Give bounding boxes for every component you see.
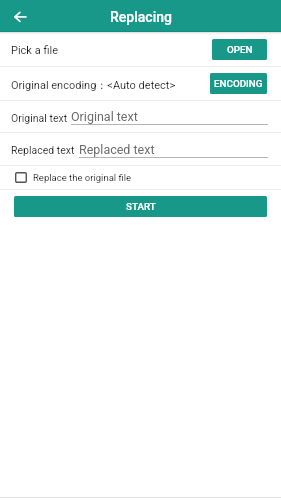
staticText: OPEN — [227, 44, 253, 55]
staticText: Replaced text — [11, 144, 75, 156]
button[interactable]: Replace the original file — [0, 166, 281, 189]
staticText: START — [126, 201, 156, 212]
staticText: Pick a file — [11, 44, 58, 57]
staticText: ENCODING — [214, 78, 263, 89]
staticText: Original encoding：<Auto detect> — [11, 78, 176, 92]
button[interactable]: ENCODING — [210, 73, 267, 94]
button[interactable]: Original encoding：<Auto detect> — [0, 67, 281, 100]
button[interactable]: START — [14, 196, 267, 217]
staticText: Replaced text — [79, 142, 155, 157]
button[interactable]: Pick a file — [0, 32, 281, 66]
staticText: Replace the original file — [33, 172, 132, 183]
staticText: Replacing — [110, 9, 172, 25]
button[interactable]: Original text — [71, 101, 268, 132]
button[interactable]: Back — [7, 7, 27, 27]
button[interactable]: OPEN — [212, 39, 267, 60]
staticText: Original text — [11, 112, 68, 124]
staticText: Original text — [71, 109, 138, 124]
button[interactable]: Replaced text — [79, 133, 268, 165]
